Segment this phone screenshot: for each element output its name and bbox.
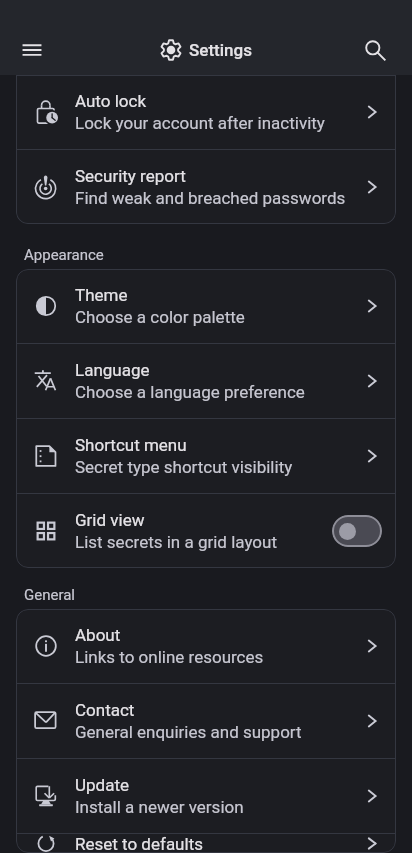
button[interactable]: Update — [16, 759, 396, 833]
staticText: Find weak and breached passwords — [75, 188, 346, 208]
button[interactable]: Auto lock — [16, 75, 396, 149]
staticText: Appearance — [24, 246, 104, 264]
staticText: Grid view — [75, 510, 145, 530]
staticText: Auto lock — [75, 91, 147, 111]
staticText: Install a newer version — [75, 797, 244, 817]
staticText: Contact — [75, 700, 135, 720]
button[interactable]: Search — [353, 28, 397, 72]
staticText: Settings — [189, 40, 252, 60]
button[interactable]: Security report — [16, 150, 396, 224]
staticText: Security report — [75, 166, 186, 186]
staticText: General — [24, 586, 76, 604]
button[interactable]: Theme — [16, 269, 396, 343]
staticText: General enquiries and support — [75, 722, 302, 742]
staticText: Choose a language preference — [75, 382, 305, 402]
staticText: Choose a color palette — [75, 307, 245, 327]
staticText: Links to online resources — [75, 647, 264, 667]
staticText: Shortcut menu — [75, 435, 187, 455]
staticText: Secret type shortcut visibility — [75, 457, 293, 477]
staticText: Update — [75, 775, 129, 795]
button[interactable]: Grid view — [16, 494, 396, 568]
button[interactable]: Grid view toggle, off — [332, 515, 382, 547]
button[interactable]: Shortcut menu — [16, 419, 396, 493]
button[interactable]: Contact — [16, 684, 396, 758]
staticText: Language — [75, 360, 150, 380]
button[interactable]: Reset to defaults — [16, 834, 396, 853]
button[interactable]: Language — [16, 344, 396, 418]
staticText: List secrets in a grid layout — [75, 532, 277, 552]
button[interactable]: Open navigation menu — [10, 28, 54, 72]
staticText: Theme — [75, 285, 128, 305]
button[interactable]: About — [16, 609, 396, 683]
staticText: Lock your account after inactivity — [75, 113, 325, 133]
staticText: About — [75, 625, 121, 645]
staticText: Reset to defaults — [75, 834, 203, 853]
